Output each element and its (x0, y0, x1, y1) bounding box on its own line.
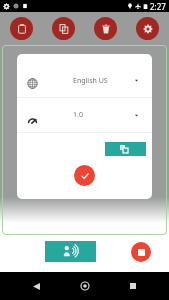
staticText: English US (73, 76, 108, 86)
button[interactable]: Paste (10, 17, 33, 40)
staticText: 2:27 (150, 1, 166, 12)
staticText: 1.0 (73, 110, 83, 120)
button[interactable]: Delete (94, 17, 117, 40)
button[interactable]: Stop (131, 242, 151, 262)
button[interactable]: Speak (45, 241, 96, 262)
button[interactable]: Recents (121, 274, 145, 298)
button[interactable]: Settings (136, 17, 159, 40)
button[interactable]: Copy (52, 17, 75, 40)
button[interactable]: Confirm (74, 165, 95, 186)
button[interactable]: Translate (105, 142, 146, 156)
button[interactable]: 1.0 (17, 98, 152, 132)
button[interactable]: Home (73, 274, 97, 298)
button[interactable]: Back (24, 274, 48, 298)
button[interactable]: English US (17, 64, 152, 97)
